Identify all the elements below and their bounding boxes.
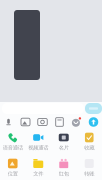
button[interactable]: Send bbox=[85, 116, 102, 128]
staticText: 红包 bbox=[59, 170, 69, 177]
button[interactable]: 位置 bbox=[0, 154, 25, 180]
staticText: 位置 bbox=[8, 170, 18, 177]
staticText: 名片 bbox=[59, 144, 69, 151]
button[interactable]: 红包 bbox=[51, 154, 76, 180]
button[interactable]: Voice input bbox=[85, 103, 102, 114]
button[interactable]: 名片 bbox=[51, 128, 76, 154]
button[interactable]: 视频通话 bbox=[25, 128, 51, 154]
button[interactable]: Photos bbox=[17, 116, 34, 128]
staticText: 收藏 bbox=[84, 144, 94, 151]
button[interactable]: Red packet bbox=[51, 116, 68, 128]
button[interactable]: 文件 bbox=[25, 154, 51, 180]
button[interactable]: Stickers bbox=[68, 116, 85, 128]
button[interactable]: 收藏 bbox=[76, 128, 102, 154]
button[interactable]: Camera bbox=[34, 116, 51, 128]
button[interactable]: Voice message bbox=[0, 116, 17, 128]
staticText: 语音通话 bbox=[3, 144, 23, 151]
staticText: 文件 bbox=[33, 170, 43, 177]
button[interactable]: 转账 bbox=[76, 154, 102, 180]
staticText: 视频通话 bbox=[28, 144, 48, 151]
button[interactable]: 语音通话 bbox=[0, 128, 25, 154]
staticText: 转账 bbox=[84, 170, 94, 177]
